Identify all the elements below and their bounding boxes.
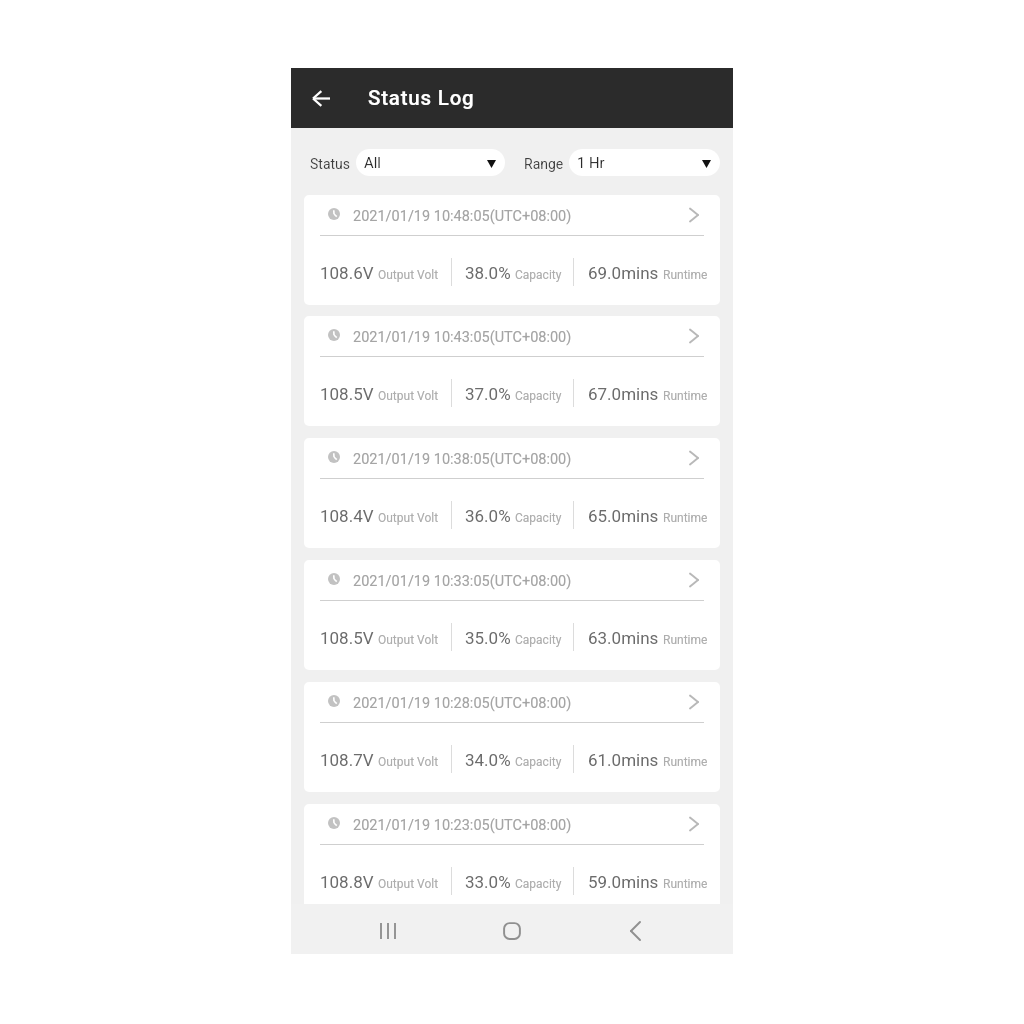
button[interactable]: 2021/01/19 10:28:05(UTC+08:00) [304,682,720,792]
staticText: Capacity [515,755,562,769]
staticText: 63.0mins [588,628,659,648]
button[interactable]: 1 Hr [569,149,720,176]
staticText: 65.0mins [588,506,659,526]
staticText: All [364,154,381,171]
staticText: 108.5V [320,384,374,404]
staticText: 1 Hr [577,154,605,171]
staticText: Runtime [663,268,708,282]
button[interactable]: 2021/01/19 10:33:05(UTC+08:00) [304,560,720,670]
button[interactable]: 2021/01/19 10:48:05(UTC+08:00) [304,195,720,305]
staticText: 35.0% [465,628,511,648]
staticText: 2021/01/19 10:48:05(UTC+08:00) [353,208,572,225]
staticText: 108.6V [320,263,374,283]
staticText: Output Volt [378,633,439,647]
staticText: 2021/01/19 10:23:05(UTC+08:00) [353,817,572,834]
staticText: Runtime [663,511,708,525]
staticText: Runtime [663,633,708,647]
staticText: Output Volt [378,268,439,282]
staticText: 37.0% [465,384,511,404]
button[interactable]: View details [678,564,710,596]
staticText: 108.5V [320,628,374,648]
staticText: Output Volt [378,755,439,769]
button[interactable]: View details [678,199,710,231]
button[interactable]: 2021/01/19 10:43:05(UTC+08:00) [304,316,720,426]
button[interactable]: View details [678,686,710,718]
staticText: 33.0% [465,872,511,892]
button[interactable]: 2021/01/19 10:38:05(UTC+08:00) [304,438,720,548]
staticText: 61.0mins [588,750,659,770]
staticText: 108.4V [320,506,374,526]
staticText: 108.8V [320,872,374,892]
button[interactable]: 2021/01/19 10:23:05(UTC+08:00) [304,804,720,914]
button[interactable]: View details [678,320,710,352]
staticText: 36.0% [465,506,511,526]
staticText: Capacity [515,633,562,647]
staticText: Output Volt [378,511,439,525]
button[interactable]: View details [678,442,710,474]
staticText: 108.7V [320,750,374,770]
staticText: 34.0% [465,750,511,770]
staticText: 38.0% [465,263,511,283]
staticText: Status [310,156,351,172]
button[interactable]: Recents [358,906,418,956]
staticText: 59.0mins [588,872,659,892]
staticText: Status Log [368,86,475,110]
staticText: Runtime [663,389,708,403]
button[interactable]: All [356,149,505,176]
staticText: 2021/01/19 10:38:05(UTC+08:00) [353,451,572,468]
button[interactable]: Back [605,906,665,956]
button[interactable]: View details [678,808,710,840]
staticText: Capacity [515,877,562,891]
staticText: Output Volt [378,389,439,403]
staticText: Runtime [663,755,708,769]
staticText: Capacity [515,389,562,403]
button[interactable]: Home [482,906,542,956]
staticText: Runtime [663,877,708,891]
button[interactable]: Back [301,78,341,118]
staticText: 2021/01/19 10:43:05(UTC+08:00) [353,329,572,346]
staticText: 2021/01/19 10:28:05(UTC+08:00) [353,695,572,712]
staticText: 2021/01/19 10:33:05(UTC+08:00) [353,573,572,590]
staticText: Range [524,156,564,172]
staticText: Output Volt [378,877,439,891]
staticText: 67.0mins [588,384,659,404]
staticText: Capacity [515,511,562,525]
staticText: 69.0mins [588,263,659,283]
staticText: Capacity [515,268,562,282]
